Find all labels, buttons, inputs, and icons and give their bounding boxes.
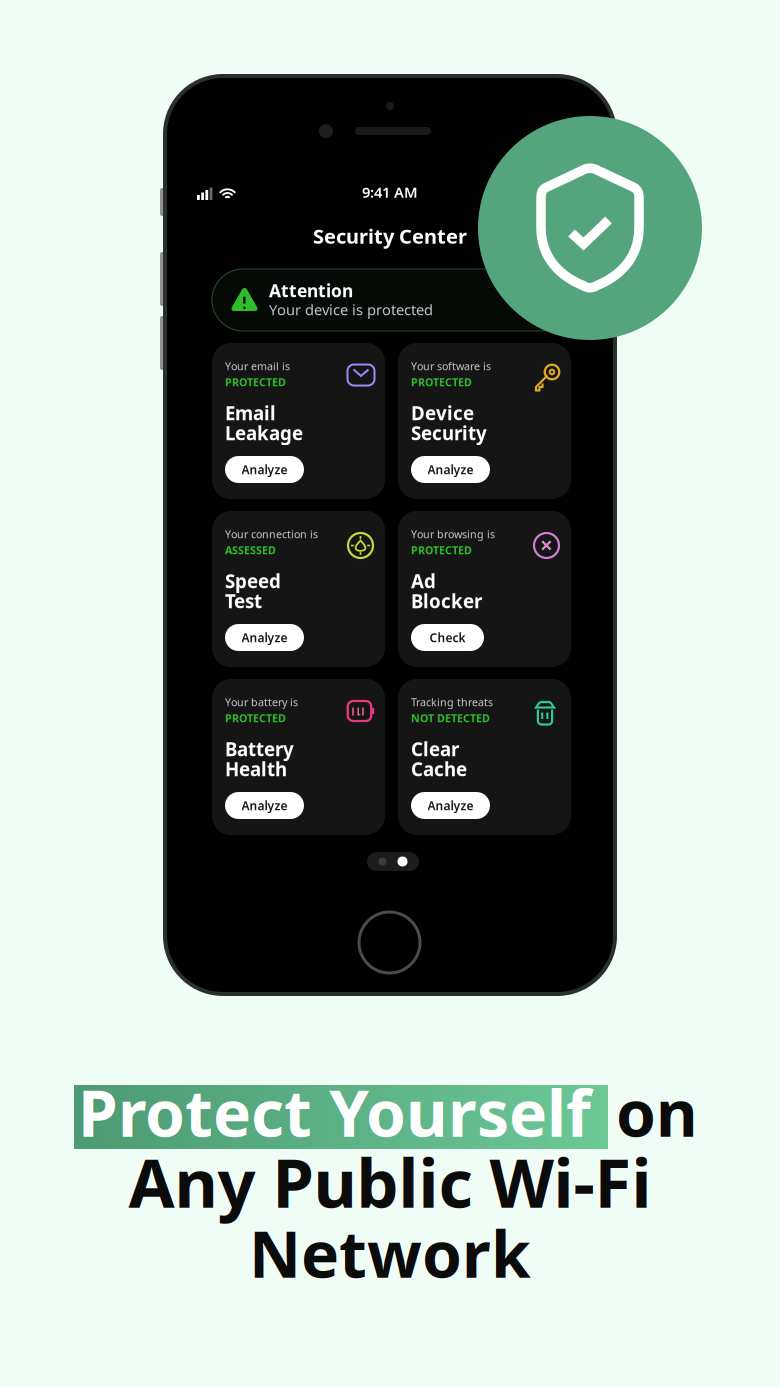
button[interactable]: Analyze [225, 624, 304, 651]
staticText: ASSESSED [225, 543, 276, 557]
button[interactable]: Analyze [225, 792, 304, 819]
staticText: Your software is [411, 359, 491, 373]
button[interactable]: Tracking threats [398, 679, 571, 835]
staticText: Your battery is [225, 695, 298, 709]
staticText: Health [225, 757, 287, 781]
staticText: Analyze [241, 629, 287, 645]
staticText: Cache [411, 757, 467, 781]
staticText: Security [411, 421, 487, 445]
button[interactable]: Your connection is [212, 511, 385, 667]
staticText: NOT DETECTED [411, 711, 490, 725]
staticText: Your email is [225, 359, 290, 373]
staticText: Speed [225, 569, 281, 593]
staticText: Security Center [313, 223, 467, 249]
staticText: PROTECTED [225, 711, 286, 725]
staticText: PROTECTED [411, 543, 472, 557]
button[interactable]: Analyze [225, 456, 304, 483]
button[interactable]: Attention [212, 269, 570, 331]
button[interactable]: Check [411, 624, 484, 651]
staticText: Analyze [241, 461, 287, 477]
staticText: Email [225, 401, 276, 425]
staticText: Analyze [241, 797, 287, 813]
staticText: PROTECTED [225, 375, 286, 389]
staticText: Test [225, 589, 262, 613]
staticText: Any Public Wi-Fi [128, 1138, 651, 1226]
staticText: Protect Yourself [78, 1069, 591, 1154]
staticText: Blocker [411, 589, 482, 613]
staticText: Your device is protected [269, 300, 433, 319]
staticText: Analyze [427, 461, 473, 477]
button[interactable]: Your email is [212, 343, 385, 499]
button[interactable]: Analyze [411, 792, 490, 819]
staticText: Analyze [427, 797, 473, 813]
staticText: Leakage [225, 421, 303, 445]
button[interactable]: Your battery is [212, 679, 385, 835]
staticText: Clear [411, 737, 459, 761]
staticText: on [616, 1069, 698, 1154]
staticText: Ad [411, 569, 436, 593]
staticText: 9:41 AM [362, 182, 418, 202]
staticText: Tracking threats [411, 695, 493, 709]
button[interactable]: Your browsing is [398, 511, 571, 667]
staticText: PROTECTED [411, 375, 472, 389]
staticText: Attention [269, 279, 353, 302]
button[interactable]: Your software is [398, 343, 571, 499]
staticText: Device [411, 401, 474, 425]
staticText: Battery [225, 737, 294, 761]
staticText: Check [429, 629, 465, 645]
button[interactable]: Analyze [411, 456, 490, 483]
staticText: Network [249, 1210, 531, 1295]
staticText: Your browsing is [411, 527, 495, 541]
staticText: Your connection is [225, 527, 318, 541]
